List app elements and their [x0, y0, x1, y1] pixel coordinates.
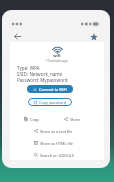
staticText: Type: WPA: [17, 65, 40, 71]
staticText: Password: Mypassword: [17, 77, 68, 83]
staticText: Share as HTML file: [40, 141, 73, 146]
staticText: Copy password: [39, 100, 67, 105]
staticText: SSID: Network_name: [17, 71, 63, 77]
staticText: wifi: [53, 53, 61, 59]
button[interactable]: Search on GOOGLE: [34, 150, 75, 160]
button[interactable]: Share as HTML file: [34, 138, 73, 148]
staticText: Search on GOOGLE: [40, 153, 75, 158]
staticText: Copy: [30, 117, 39, 122]
button[interactable]: Favorite: [87, 30, 100, 43]
button[interactable]: Back: [11, 30, 24, 43]
button[interactable]: Share: [64, 114, 81, 124]
staticText: Share as a text file: [40, 129, 73, 134]
staticText: Share: [70, 117, 81, 122]
button[interactable]: Copy: [24, 114, 39, 124]
button[interactable]: Connect to WiFi: [27, 85, 73, 93]
button[interactable]: Share as a text file: [34, 126, 73, 136]
staticText: 10 minutes ago: [46, 59, 68, 63]
button[interactable]: Copy password: [28, 98, 72, 106]
staticText: Connect to WiFi: [39, 87, 67, 92]
